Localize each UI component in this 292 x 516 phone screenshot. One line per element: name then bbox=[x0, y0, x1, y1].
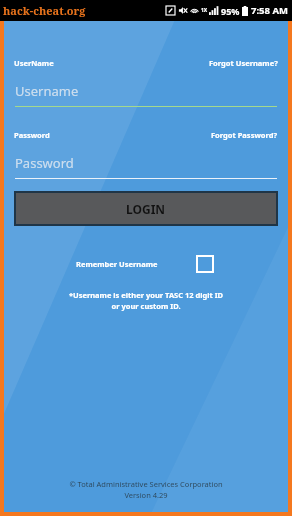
staticText: 7:58 AM bbox=[251, 4, 288, 17]
button[interactable]: LOGIN bbox=[14, 191, 278, 226]
staticText: *Username is either your TASC 12 digit I… bbox=[24, 290, 268, 311]
staticText: LOGIN bbox=[126, 201, 166, 217]
button[interactable]: Password bbox=[15, 154, 277, 179]
staticText: Password bbox=[15, 154, 74, 172]
button[interactable]: Forgot Password? bbox=[211, 130, 278, 140]
staticText: 95% bbox=[221, 5, 240, 17]
staticText: Username bbox=[15, 82, 79, 100]
button[interactable]: Forgot Username? bbox=[209, 58, 278, 68]
staticText: © Total Administrative Services Corporat… bbox=[18, 479, 274, 500]
staticText: Forgot Password? bbox=[211, 130, 278, 140]
staticText: Remember Username bbox=[76, 259, 158, 269]
button[interactable]: Username bbox=[15, 82, 277, 107]
staticText: 1X bbox=[201, 7, 208, 14]
button[interactable]: Remember Username checkbox bbox=[196, 255, 214, 273]
staticText: Forgot Username? bbox=[209, 58, 278, 68]
staticText: UserName bbox=[14, 58, 54, 68]
staticText: Password bbox=[14, 130, 50, 140]
staticText: hack-cheat.org bbox=[3, 3, 86, 18]
